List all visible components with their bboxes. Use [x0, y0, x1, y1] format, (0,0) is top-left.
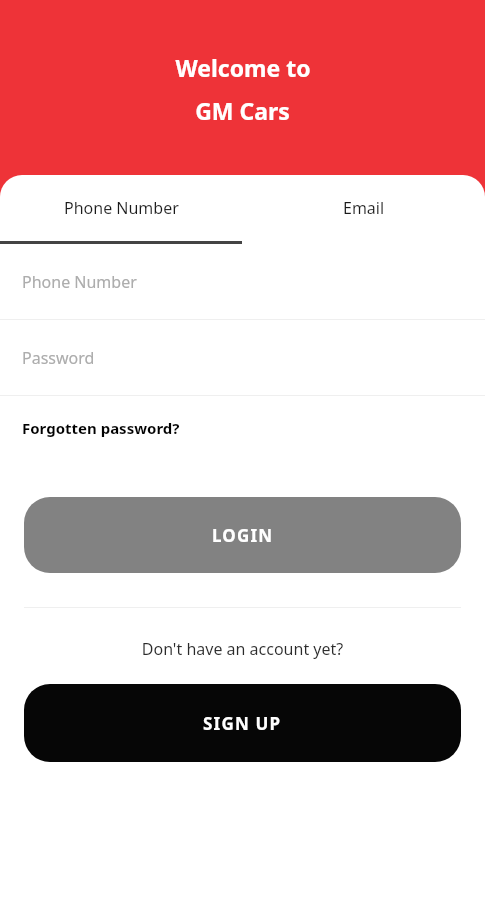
- staticText: Don't have an account yet?: [0, 638, 485, 660]
- staticText: Phone Number: [22, 271, 137, 293]
- staticText: Phone Number: [64, 197, 179, 219]
- button[interactable]: SIGN UP: [24, 684, 461, 762]
- staticText: Forgotten password?: [22, 418, 180, 438]
- button[interactable]: Forgotten password?: [0, 396, 485, 460]
- staticText: LOGIN: [212, 524, 274, 547]
- staticText: Welcome to: [175, 52, 311, 83]
- button[interactable]: LOGIN: [24, 497, 461, 573]
- staticText: Email: [343, 197, 385, 219]
- staticText: Password: [22, 347, 95, 369]
- button[interactable]: Phone Number: [0, 244, 485, 319]
- button[interactable]: Phone Number: [0, 175, 242, 241]
- staticText: SIGN UP: [203, 712, 282, 735]
- staticText: GM Cars: [195, 95, 290, 126]
- button[interactable]: Password: [0, 320, 485, 395]
- button[interactable]: Email: [242, 175, 485, 241]
